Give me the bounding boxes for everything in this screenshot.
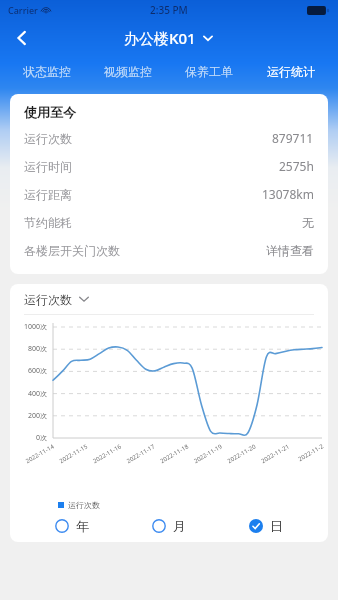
staticText: 运行距离 <box>24 187 72 202</box>
button[interactable]: 运行次数 <box>10 284 328 314</box>
button[interactable]: 日 <box>217 518 314 534</box>
button[interactable]: 年 <box>24 518 120 534</box>
button[interactable]: 视频监控 <box>87 56 168 86</box>
staticText: 年 <box>76 518 89 534</box>
staticText: 运行次数 <box>68 500 100 510</box>
button[interactable]: 各楼层开关门次数 <box>24 236 314 264</box>
staticText: 日 <box>270 518 283 534</box>
staticText: 保养工单 <box>185 64 233 79</box>
button[interactable]: 状态监控 <box>6 56 87 86</box>
staticText: 运行次数 <box>24 131 72 146</box>
staticText: 运行统计 <box>267 64 315 79</box>
button[interactable]: 月 <box>120 518 217 534</box>
staticText: 办公楼K01 <box>124 28 196 48</box>
staticText: 无 <box>302 215 314 230</box>
staticText: 月 <box>173 518 186 534</box>
button[interactable]: Back <box>4 20 40 56</box>
staticText: 运行次数 <box>24 292 72 307</box>
staticText: 13078km <box>262 186 314 202</box>
staticText: 使用至今 <box>24 104 76 120</box>
button[interactable]: 保养工单 <box>168 56 250 86</box>
staticText: 状态监控 <box>23 64 71 79</box>
staticText: 详情查看 <box>266 243 314 258</box>
staticText: 运行时间 <box>24 159 72 174</box>
staticText: 节约能耗 <box>24 215 72 230</box>
staticText: 各楼层开关门次数 <box>24 243 120 258</box>
button[interactable]: 办公楼K01 <box>124 28 214 48</box>
staticText: Carrier <box>8 4 38 16</box>
staticText: 视频监控 <box>104 64 152 79</box>
staticText: 879711 <box>272 130 314 146</box>
staticText: 2575h <box>279 158 314 174</box>
button[interactable]: 运行统计 <box>250 56 332 86</box>
staticText: 2:35 PM <box>150 3 188 17</box>
